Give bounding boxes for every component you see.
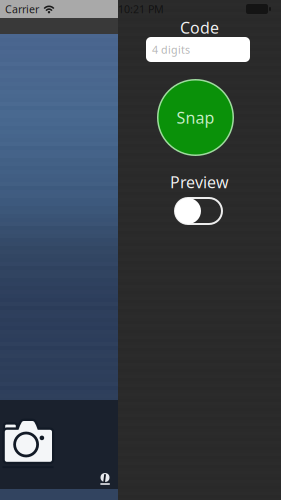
- button[interactable]: 4 digits: [146, 37, 250, 62]
- staticText: 4 digits: [152, 42, 190, 57]
- button[interactable]: Preview: [175, 198, 222, 224]
- button[interactable]: Snap: [157, 79, 234, 156]
- staticText: Code: [180, 17, 219, 38]
- button[interactable]: Take photo: [0, 400, 57, 472]
- staticText: Snap: [176, 107, 214, 128]
- staticText: 10:21 PM: [118, 2, 164, 16]
- staticText: Preview: [170, 171, 229, 193]
- staticText: Carrier: [5, 2, 39, 16]
